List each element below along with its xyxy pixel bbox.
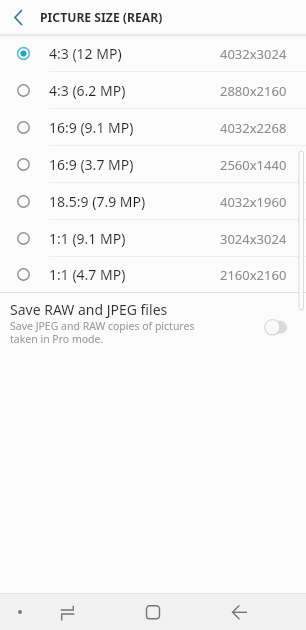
- staticText: 4:3 (12 MP): [49, 44, 122, 63]
- button[interactable]: 1:1 (4.7 MP): [0, 257, 306, 292]
- button[interactable]: 16:9 (3.7 MP): [0, 146, 306, 183]
- button[interactable]: 18.5:9 (7.9 MP): [0, 183, 306, 220]
- staticText: 18.5:9 (7.9 MP): [49, 192, 146, 211]
- button[interactable]: 4:3 (6.2 MP): [0, 72, 306, 109]
- button[interactable]: 16:9 (9.1 MP): [0, 109, 306, 146]
- staticText: 16:9 (9.1 MP): [49, 118, 134, 137]
- staticText: Save JPEG and RAW copies of pictures tak…: [10, 319, 195, 346]
- button[interactable]: 4:3 (12 MP): [0, 35, 306, 72]
- staticText: 4032x3024: [220, 45, 287, 63]
- staticText: 2160x2160: [220, 266, 287, 284]
- staticText: 2880x2160: [220, 82, 287, 100]
- staticText: 16:9 (3.7 MP): [49, 155, 134, 174]
- staticText: 4032x1960: [220, 193, 287, 211]
- button[interactable]: 1:1 (9.1 MP): [0, 220, 306, 257]
- staticText: 4:3 (6.2 MP): [49, 81, 126, 100]
- staticText: 2560x1440: [220, 156, 287, 174]
- staticText: 1:1 (4.7 MP): [49, 265, 126, 284]
- staticText: Save RAW and JPEG files: [10, 300, 168, 319]
- button[interactable]: [133, 593, 173, 630]
- button[interactable]: [0, 0, 34, 35]
- button[interactable]: [12, 604, 28, 620]
- button[interactable]: [219, 593, 259, 630]
- staticText: PICTURE SIZE (REAR): [40, 9, 163, 26]
- button[interactable]: Save RAW and JPEG files: [0, 293, 306, 349]
- staticText: 4032x2268: [220, 119, 287, 137]
- staticText: 1:1 (9.1 MP): [49, 229, 126, 248]
- staticText: 3024x3024: [220, 230, 287, 248]
- button[interactable]: [47, 593, 87, 630]
